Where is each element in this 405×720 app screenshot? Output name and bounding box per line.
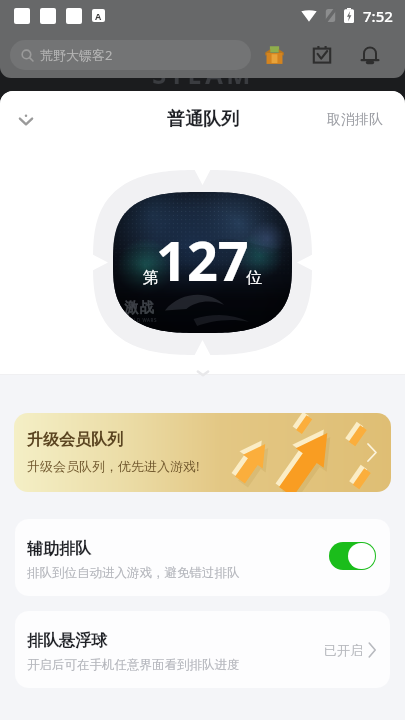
staticText: 激战 [124,299,154,317]
staticText: 荒野大镖客2 [40,46,113,64]
staticText: 辅助排队 [27,539,91,559]
staticText: A [95,10,102,22]
button[interactable]: Notifications [355,40,385,70]
button[interactable]: Auto queue toggle, on [329,542,376,570]
staticText: 已开启 [324,642,363,658]
staticText: GUILD WARS [124,317,158,323]
button[interactable]: Collapse [8,102,44,138]
button[interactable]: 取消排队 [321,105,389,135]
staticText: 位 [246,268,262,288]
staticText: 排队悬浮球 [27,631,107,651]
staticText: STEAM [152,56,254,91]
staticText: 普通队列 [167,108,239,131]
staticText: 127 [156,223,249,297]
button[interactable]: Tasks [307,40,337,70]
staticText: 取消排队 [327,111,383,129]
staticText: 排队到位自动进入游戏，避免错过排队 [27,565,240,581]
staticText: 第 [143,268,159,288]
button[interactable]: 辅助排队 [15,519,390,596]
staticText: 7:52 [363,6,393,26]
button[interactable]: Rewards box [259,40,289,70]
button[interactable]: 排队悬浮球 [15,611,390,688]
button[interactable]: 升级会员队列 [14,413,391,492]
staticText: 升级会员队列 [27,430,123,450]
staticText: 升级会员队列，优先进入游戏! [27,457,200,475]
staticText: 开启后可在手机任意界面看到排队进度 [27,657,240,673]
